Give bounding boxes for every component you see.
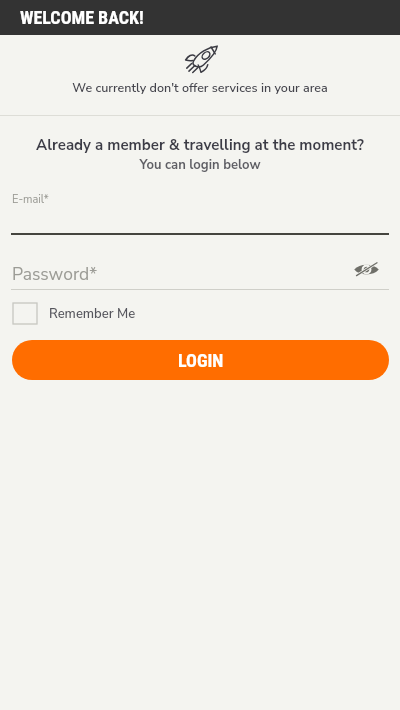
button[interactable]: Remember Me (13, 303, 136, 324)
staticText: You can login below (0, 156, 400, 174)
staticText: Remember Me (49, 305, 136, 323)
button[interactable]: Show password (350, 253, 382, 285)
staticText: Already a member & travelling at the mom… (0, 135, 400, 155)
staticText: LOGIN (178, 350, 224, 371)
staticText: We currently don't offer services in you… (0, 79, 400, 96)
staticText: Password* (12, 262, 98, 286)
button[interactable]: LOGIN (12, 340, 389, 380)
staticText: E-mail* (12, 192, 49, 207)
staticText: WELCOME BACK! (20, 7, 144, 28)
